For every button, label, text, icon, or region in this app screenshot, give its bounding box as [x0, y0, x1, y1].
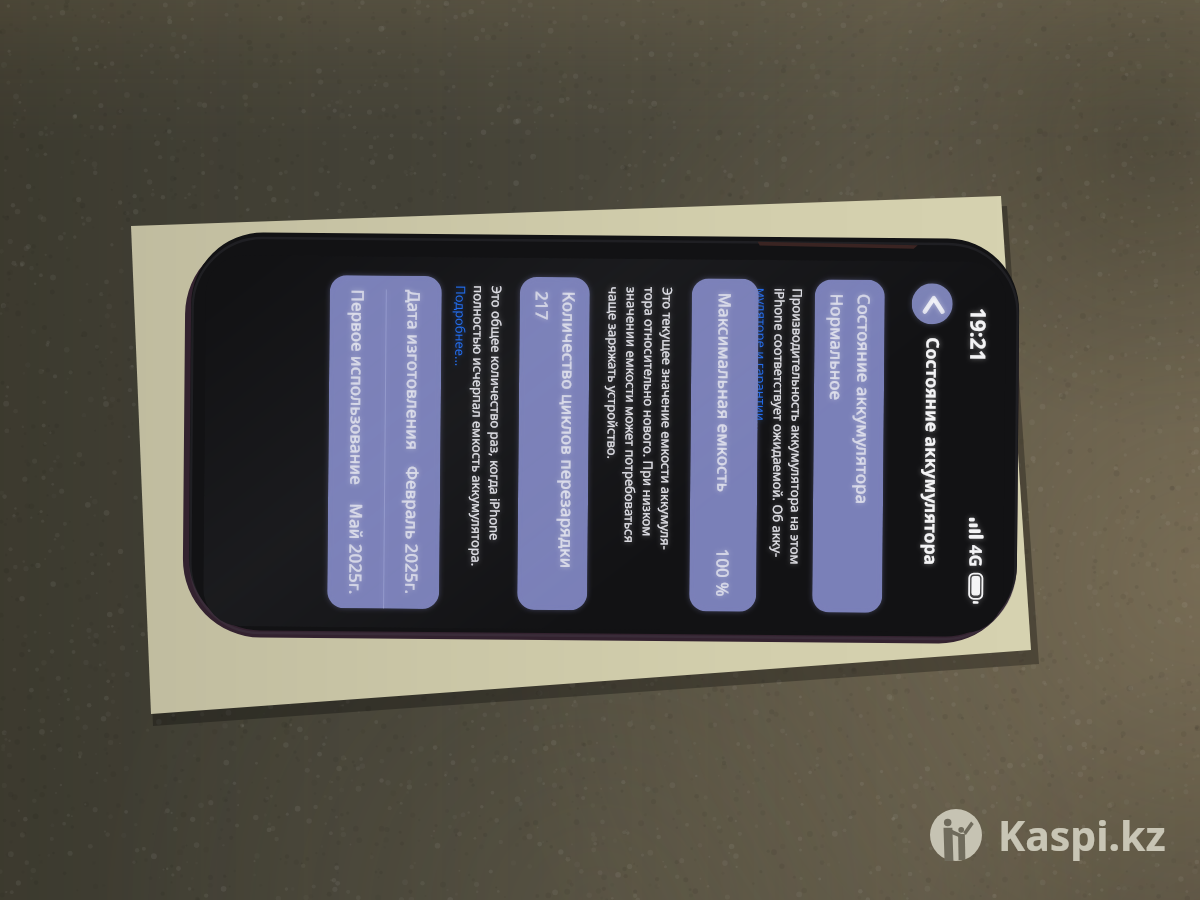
- staticText: Май 2025г.: [344, 503, 368, 594]
- staticText: 217: [531, 291, 554, 321]
- staticText: полностью исчерпал емкость аккумулятора.: [467, 285, 488, 566]
- staticText: 4G: [964, 545, 988, 568]
- button[interactable]: Дата изготовления: [327, 275, 442, 609]
- staticText: Первое использование: [345, 289, 370, 485]
- staticText: Февраль 2025г.: [400, 466, 424, 595]
- staticText: Февраль 2025г.: [400, 466, 424, 595]
- button[interactable]: Дата изготовления: [384, 276, 442, 609]
- staticText: Май 2025г.: [344, 503, 368, 594]
- staticText: Нормальное: [825, 293, 849, 401]
- staticText: Производительность аккумулятора на этом: [786, 288, 807, 565]
- button[interactable]: Подробнее...: [451, 285, 470, 367]
- staticText: чаще заряжать устройство.: [603, 286, 623, 460]
- button[interactable]: мулятоpe и гарантии...: [752, 288, 771, 432]
- staticText: Состояние аккумулятора: [851, 294, 876, 505]
- staticText: Состояние аккумулятора: [919, 337, 945, 565]
- staticText: чаще заряжать устройство.: [603, 286, 623, 460]
- button[interactable]: Назад: [912, 283, 953, 325]
- staticText: iPhone соответствует ожидаемой. Об акку-: [768, 288, 789, 558]
- button[interactable]: Первое использование: [328, 275, 386, 609]
- button[interactable]: Максимальная емкость: [689, 278, 759, 612]
- staticText: 19:21: [963, 308, 993, 362]
- staticText: тора относительно нового. При низком: [639, 287, 659, 537]
- staticText: Это общее количество раз, когда iPhone: [486, 285, 506, 541]
- staticText: Это общее количество раз, когда iPhone: [486, 285, 506, 541]
- staticText: 4G: [964, 545, 988, 568]
- staticText: полностью исчерпал емкость аккумулятора.: [467, 285, 488, 566]
- staticText: iPhone соответствует ожидаемой. Об акку-: [768, 288, 789, 558]
- button[interactable]: Дата изготовления: [327, 275, 442, 609]
- button[interactable]: Состояние аккумулятора: [812, 279, 885, 613]
- staticText: 100 %: [711, 548, 735, 598]
- staticText: Это текущее значение емкости аккумуля-: [657, 287, 677, 550]
- staticText: Дата изготовления: [401, 290, 426, 451]
- button[interactable]: Подробнее...: [451, 285, 470, 367]
- staticText: 217: [531, 291, 554, 321]
- button[interactable]: Назад: [912, 283, 953, 325]
- button[interactable]: Состояние аккумулятора: [812, 279, 885, 613]
- button[interactable]: Первое использование: [328, 275, 386, 609]
- staticText: Состояние аккумулятора: [851, 294, 876, 505]
- button[interactable]: Максимальная емкость: [689, 278, 759, 612]
- staticText: 19:21: [963, 308, 993, 362]
- staticText: Количество циклов перезарядки: [555, 291, 581, 569]
- staticText: Это текущее значение емкости аккумуля-: [657, 287, 677, 550]
- button[interactable]: Количество циклов перезарядки: [517, 277, 590, 610]
- staticText: Состояние аккумулятора: [919, 337, 945, 565]
- button[interactable]: Дата изготовления: [384, 276, 442, 609]
- staticText: Первое использование: [345, 289, 370, 485]
- staticText: 100 %: [711, 548, 735, 598]
- staticText: значении емкости может потребоваться: [621, 287, 641, 544]
- staticText: Kaspi.kz: [998, 807, 1166, 863]
- button[interactable]: мулятоpe и гарантии...: [752, 288, 771, 432]
- staticText: Производительность аккумулятора на этом: [786, 288, 807, 565]
- staticText: Дата изготовления: [401, 290, 426, 451]
- staticText: Нормальное: [825, 293, 849, 401]
- staticText: тора относительно нового. При низком: [639, 287, 659, 537]
- staticText: Максимальная емкость: [712, 292, 737, 493]
- staticText: значении емкости может потребоваться: [621, 287, 641, 544]
- staticText: Количество циклов перезарядки: [555, 291, 581, 569]
- button[interactable]: Количество циклов перезарядки: [517, 277, 590, 610]
- staticText: Максимальная емкость: [712, 292, 737, 493]
